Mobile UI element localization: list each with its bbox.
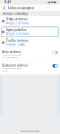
staticText: Kalbos nustatymai xyxy=(8,6,35,10)
staticText: Trumpa instrukcija xyxy=(2,12,28,15)
button[interactable]: Back xyxy=(2,5,6,11)
staticText: Sulygiuoti sakiniai xyxy=(2,64,28,67)
button[interactable]: Sulygiuoti sakiniai xyxy=(0,61,60,74)
staticText: 9:41 xyxy=(4,0,11,4)
staticText: lygiuotėje xyxy=(2,70,8,72)
button[interactable]: Žodžio tarimas xyxy=(0,37,60,48)
staticText: Žodžio tarimas xyxy=(6,39,28,42)
staticText: Gyvas pokalbis xyxy=(6,28,26,32)
staticText: Rodyti vertimą originalo kalba ir xyxy=(2,54,22,56)
staticText: Šalia vertimo xyxy=(2,50,21,54)
staticText: Tekstų vertimas xyxy=(6,17,27,21)
staticText: Anglų / Lietuvių xyxy=(6,32,29,36)
button[interactable]: Tekstų vertimas xyxy=(0,16,60,26)
staticText: Klausyti, įrašyti xyxy=(6,43,25,46)
staticText: Rodyti sakinius vieną šalia kito xyxy=(2,68,21,69)
button[interactable]: Šalia vertimo xyxy=(0,48,60,61)
staticText: perskaityti vertimą balsu xyxy=(2,57,18,58)
button[interactable]: Gyvas pokalbis xyxy=(0,27,60,37)
staticText: Anglų / Lietuvių xyxy=(6,21,29,25)
